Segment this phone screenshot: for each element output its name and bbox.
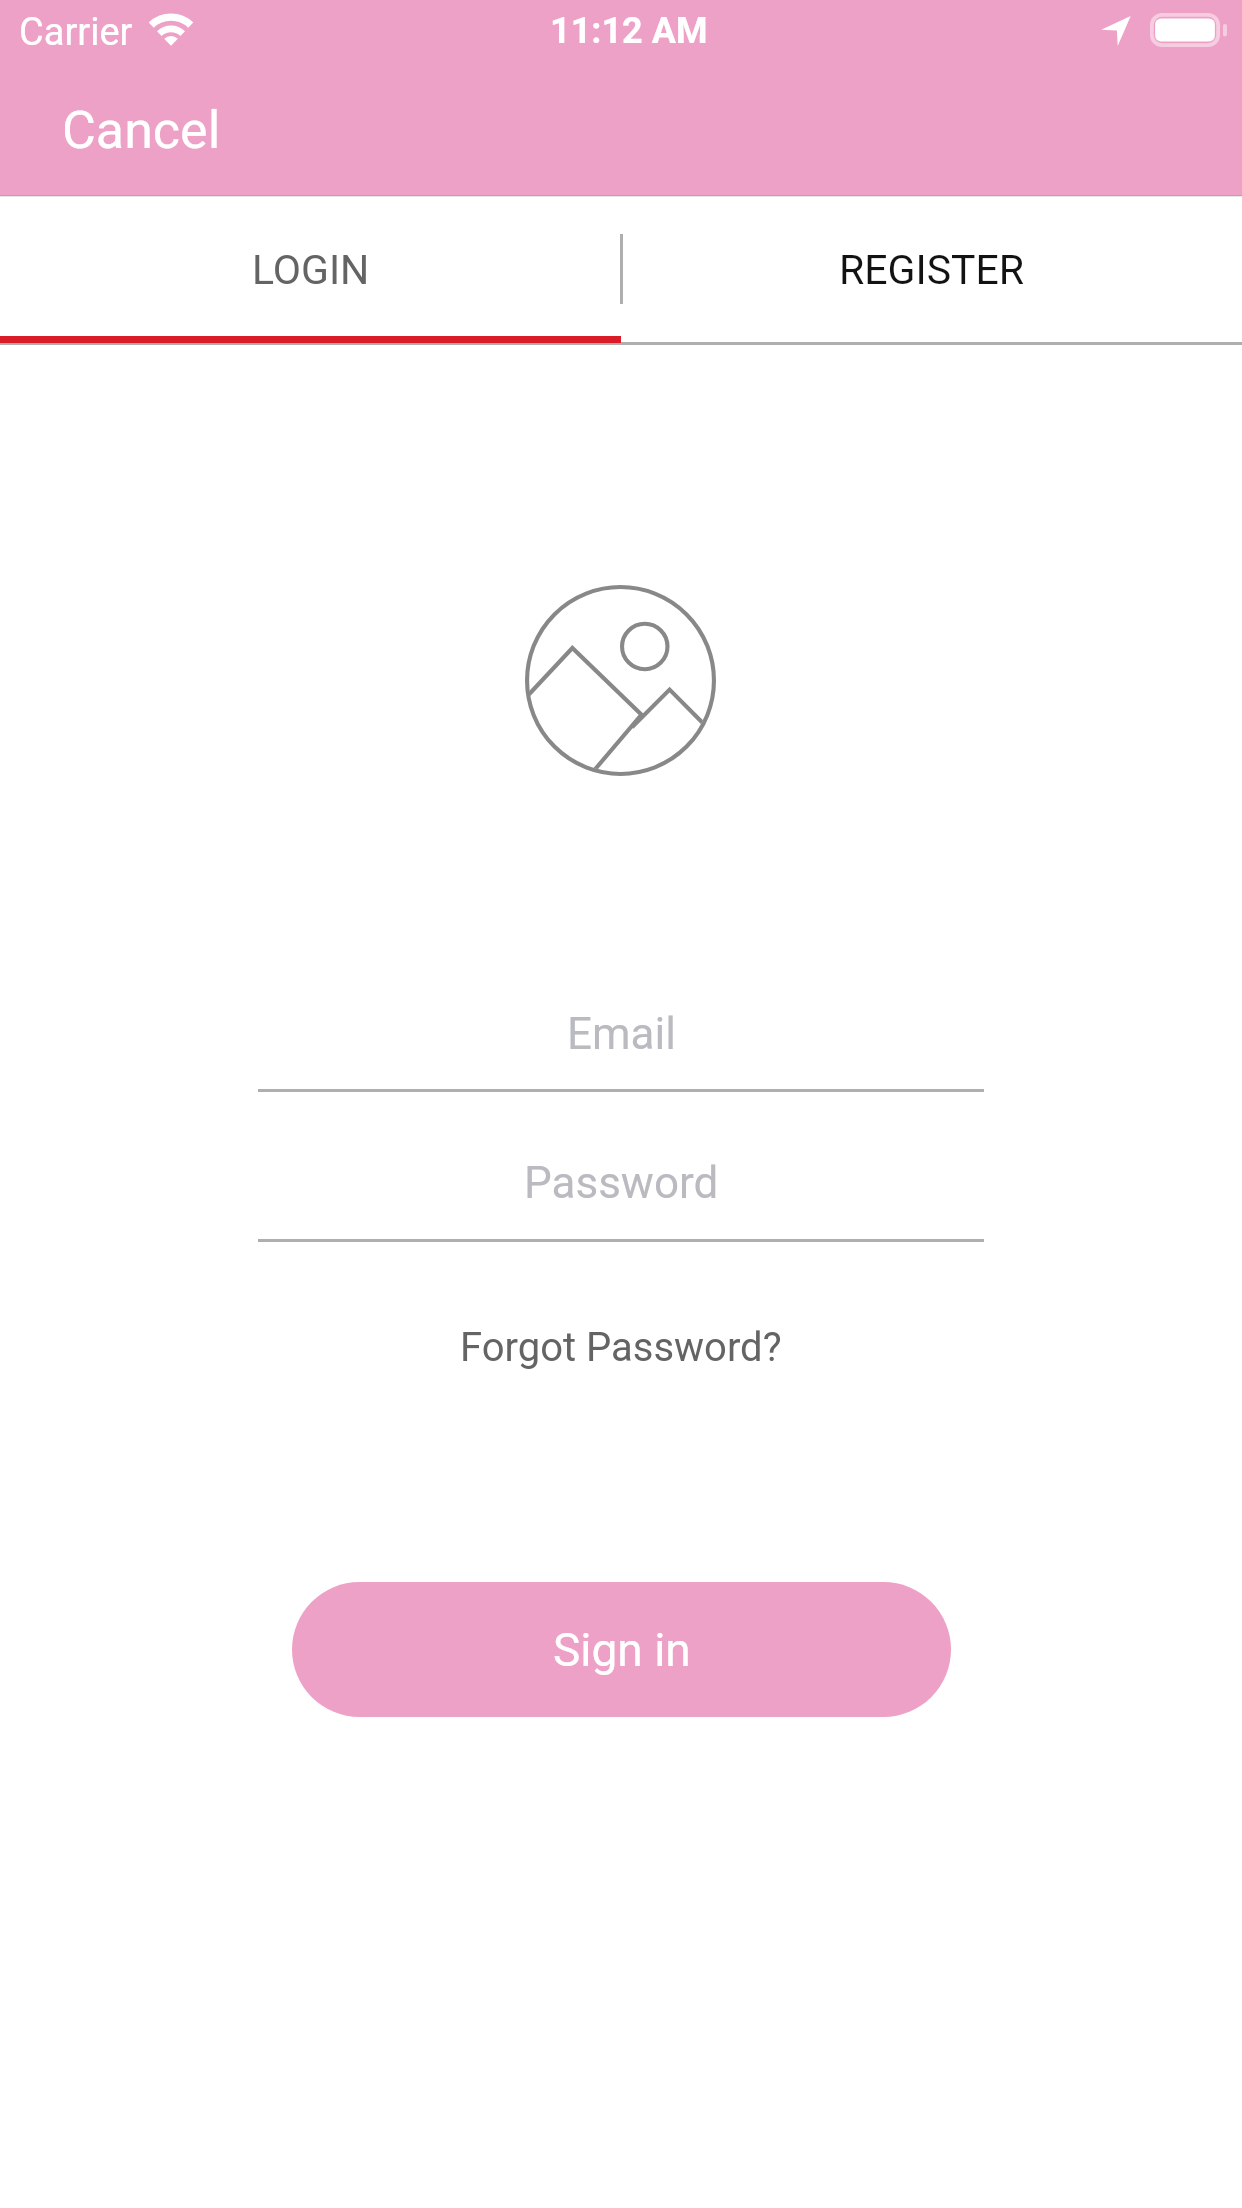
staticText: LOGIN	[252, 246, 370, 294]
staticText: REGISTER	[839, 246, 1025, 294]
staticText: 11:12 AM	[550, 10, 708, 52]
staticText: Forgot Password?	[460, 1324, 782, 1371]
button[interactable]: Cancel	[22, 86, 261, 175]
staticText: Cancel	[62, 100, 221, 161]
other: Profile image	[525, 585, 716, 776]
button[interactable]: Email	[258, 1000, 984, 1092]
other: Wi-Fi	[149, 13, 193, 46]
staticText: Password	[524, 1157, 719, 1209]
button[interactable]: REGISTER	[621, 195, 1242, 342]
other: Battery	[1150, 13, 1227, 47]
button[interactable]: Forgot Password?	[430, 1300, 812, 1395]
button[interactable]: LOGIN	[0, 195, 621, 342]
staticText: Sign in	[553, 1623, 691, 1677]
button[interactable]: Password	[258, 1150, 984, 1242]
staticText: Email	[567, 1008, 676, 1060]
staticText: Carrier	[19, 10, 133, 55]
button[interactable]: Sign in	[292, 1582, 951, 1717]
other: Location	[1101, 16, 1131, 46]
